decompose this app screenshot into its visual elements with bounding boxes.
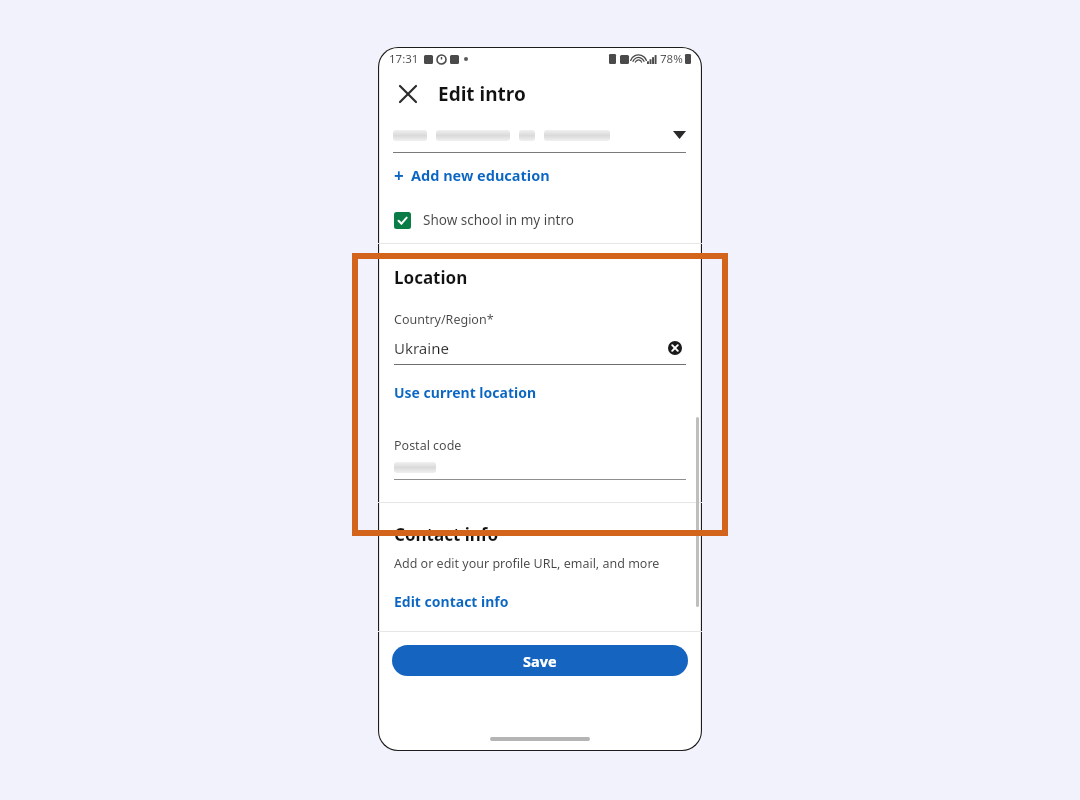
staticText: Add or edit your profile URL, email, and… [394,555,660,572]
staticText: Country/Region* [394,311,494,328]
button[interactable]: Save [392,645,688,676]
staticText: Edit intro [438,81,526,107]
staticText: Edit contact info [394,592,509,611]
staticText: Contact info [394,523,499,546]
staticText: Use current location [394,383,536,402]
staticText: Show school in my intro [423,211,574,229]
staticText: Add new education [411,165,550,185]
staticText: 78% [660,51,683,67]
staticText: Location [394,266,468,289]
button[interactable] [378,117,702,153]
button[interactable]: Show school in my intro [378,197,702,243]
button[interactable]: Close [392,78,424,110]
staticText: Postal code [394,437,462,454]
button[interactable]: + [378,153,702,197]
button[interactable]: Edit contact info [394,592,509,611]
button[interactable]: Use current location [394,383,536,402]
staticText: 17:31 [389,51,419,67]
staticText: Ukraine [394,338,449,358]
staticText: + [394,164,404,187]
staticText: Save [523,651,557,671]
button[interactable]: Clear country [664,337,686,359]
